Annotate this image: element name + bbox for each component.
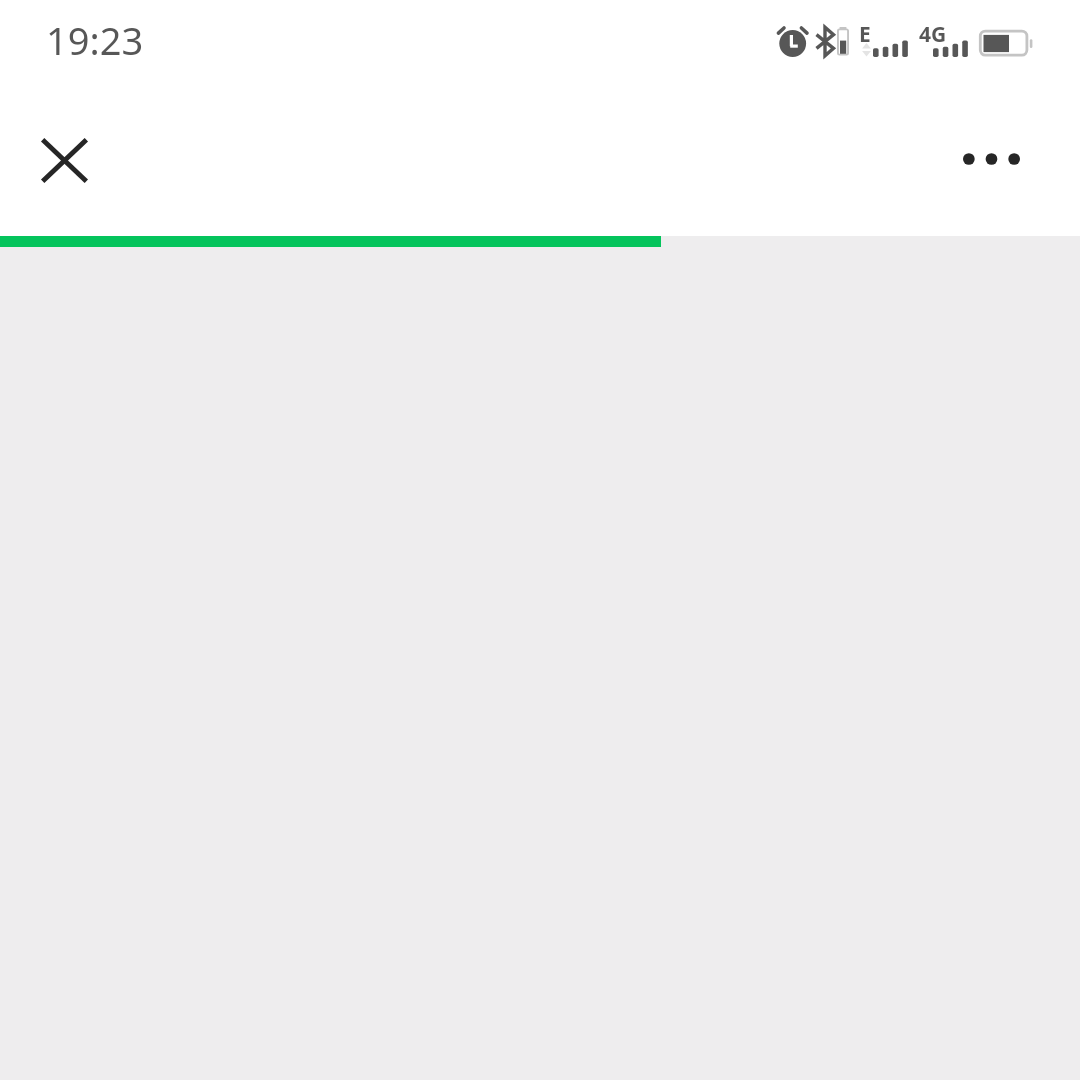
button[interactable]: Close <box>12 108 116 212</box>
staticText: E <box>859 20 871 49</box>
staticText: 4G <box>919 20 947 49</box>
button[interactable]: More options <box>939 107 1043 211</box>
staticText: 19:23 <box>46 14 144 66</box>
